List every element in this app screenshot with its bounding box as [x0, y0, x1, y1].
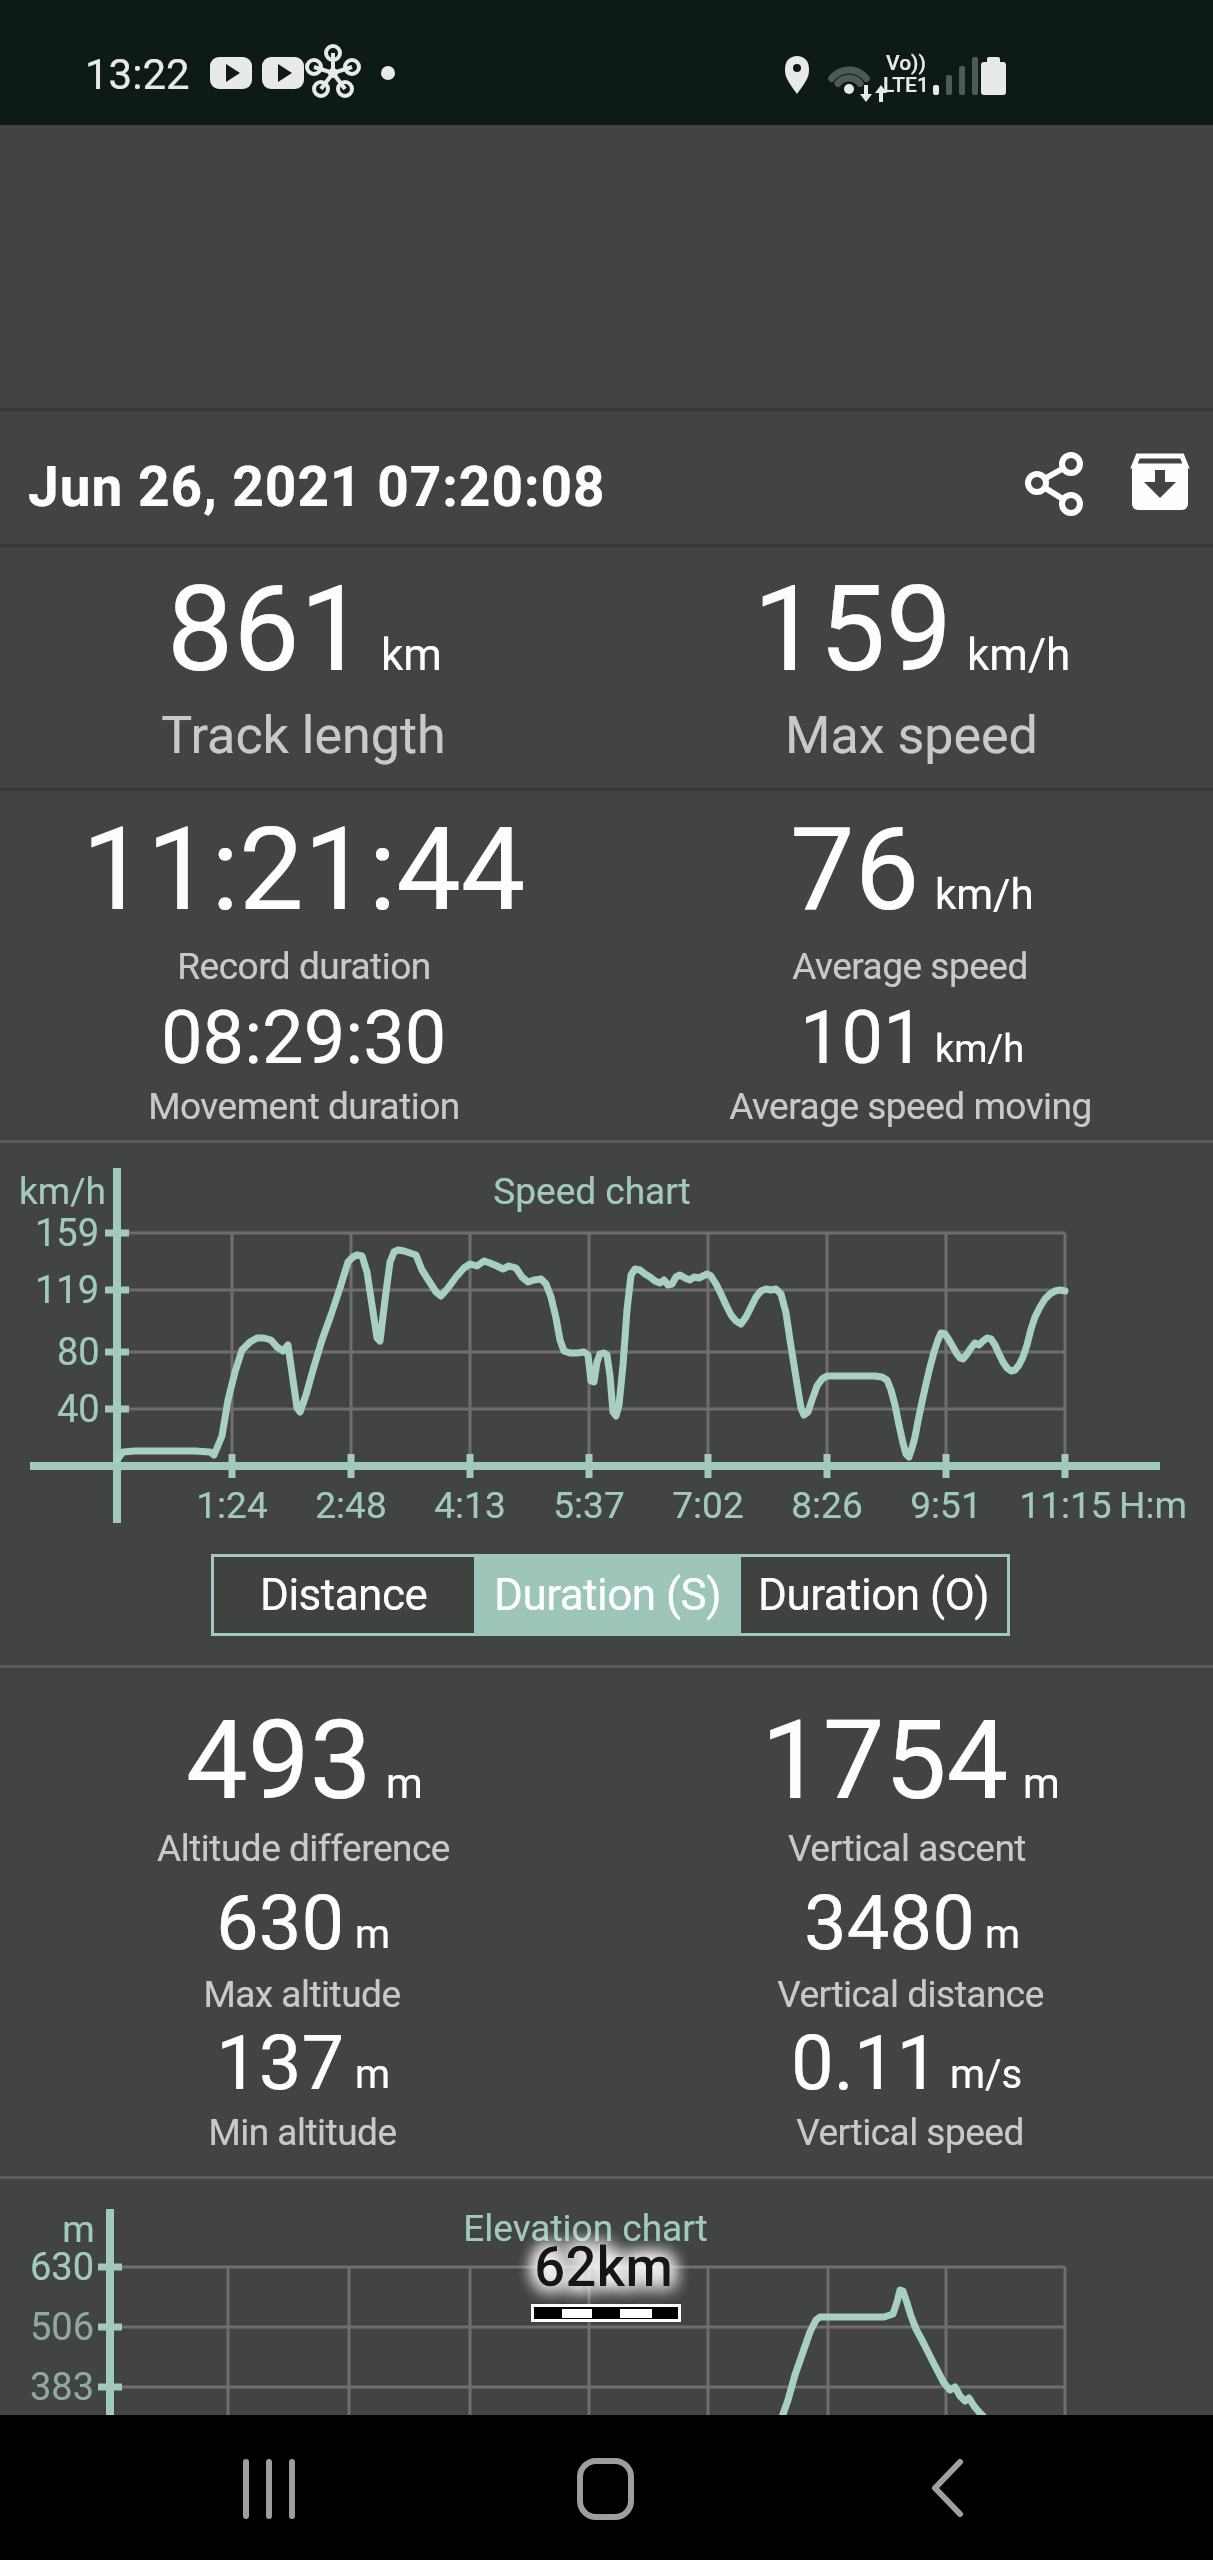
- staticText: 62km: [534, 2235, 674, 2299]
- staticText: 101: [800, 994, 925, 1081]
- staticText: m: [355, 2051, 391, 2098]
- staticText: 13:22: [85, 50, 190, 99]
- staticText: km/h: [935, 870, 1034, 919]
- staticText: 861: [167, 561, 366, 699]
- staticText: Movement duration: [148, 1085, 460, 1128]
- staticText: H:m: [1119, 1484, 1187, 1527]
- staticText: Average speed moving: [729, 1085, 1092, 1128]
- staticText: km/h: [19, 1170, 106, 1213]
- staticText: 08:29:30: [161, 994, 447, 1081]
- button[interactable]: [222, 2445, 317, 2535]
- staticText: 383: [30, 2365, 95, 2410]
- staticText: 7:02: [672, 1484, 744, 1527]
- staticText: Vo)): [886, 51, 926, 76]
- staticText: 1:24: [196, 1484, 268, 1527]
- button[interactable]: [558, 2445, 653, 2535]
- staticText: 493: [186, 1696, 372, 1825]
- staticText: Speed chart: [493, 1170, 691, 1213]
- staticText: 40: [57, 1387, 100, 1432]
- staticText: 9:51: [910, 1484, 982, 1527]
- staticText: m: [1023, 1759, 1060, 1808]
- staticText: Distance: [260, 1569, 428, 1621]
- staticText: 630: [216, 1878, 345, 1967]
- staticText: Average speed: [792, 945, 1028, 988]
- button[interactable]: Duration (O): [741, 1557, 1007, 1633]
- staticText: 3480: [804, 1878, 975, 1967]
- staticText: 76: [790, 802, 920, 937]
- staticText: 11:15: [1019, 1484, 1112, 1527]
- staticText: 506: [30, 2305, 95, 2350]
- staticText: 2:48: [315, 1484, 387, 1527]
- staticText: 1754: [761, 1696, 1009, 1825]
- staticText: 137: [216, 2018, 345, 2107]
- staticText: Duration (O): [758, 1569, 990, 1621]
- staticText: 4:13: [434, 1484, 506, 1527]
- button[interactable]: Distance: [214, 1557, 474, 1633]
- staticText: Max altitude: [203, 1973, 401, 2016]
- staticText: m/s: [950, 2051, 1023, 2098]
- staticText: 11:21:44: [82, 802, 526, 937]
- staticText: 5:37: [553, 1484, 625, 1527]
- staticText: Vertical ascent: [788, 1827, 1026, 1870]
- staticText: Max speed: [785, 705, 1038, 766]
- staticText: m: [355, 1911, 391, 1958]
- staticText: m: [985, 1911, 1021, 1958]
- staticText: m: [386, 1759, 423, 1808]
- staticText: Duration (S): [494, 1569, 722, 1621]
- staticText: Altitude difference: [157, 1827, 450, 1870]
- staticText: 62km: [534, 2235, 674, 2299]
- staticText: Jun 26, 2021 07:20:08: [28, 455, 606, 519]
- staticText: km/h: [967, 629, 1071, 681]
- staticText: 62km: [534, 2235, 674, 2299]
- staticText: km/h: [935, 1027, 1025, 1072]
- button[interactable]: [0, 412, 1213, 542]
- staticText: 159: [753, 561, 952, 699]
- staticText: 119: [35, 1268, 100, 1313]
- staticText: Vertical speed: [796, 2111, 1024, 2154]
- staticText: 159: [35, 1211, 100, 1256]
- staticText: 8:26: [791, 1484, 863, 1527]
- staticText: LTE1: [883, 73, 929, 98]
- staticText: km: [381, 629, 442, 681]
- button[interactable]: Duration (S): [474, 1554, 741, 1636]
- staticText: Min altitude: [208, 2111, 397, 2154]
- staticText: Record duration: [177, 945, 431, 988]
- staticText: 62km: [534, 2235, 674, 2299]
- button[interactable]: [1132, 452, 1190, 512]
- staticText: 0.11: [791, 2018, 940, 2107]
- staticText: m: [62, 2208, 95, 2251]
- staticText: Elevation chart: [463, 2207, 708, 2250]
- staticText: 80: [57, 1330, 100, 1375]
- staticText: 62km: [534, 2235, 674, 2299]
- staticText: Vertical distance: [777, 1973, 1044, 2016]
- staticText: 630: [30, 2245, 95, 2290]
- button[interactable]: [900, 2445, 995, 2535]
- button[interactable]: [1028, 455, 1086, 513]
- staticText: Track length: [161, 705, 446, 766]
